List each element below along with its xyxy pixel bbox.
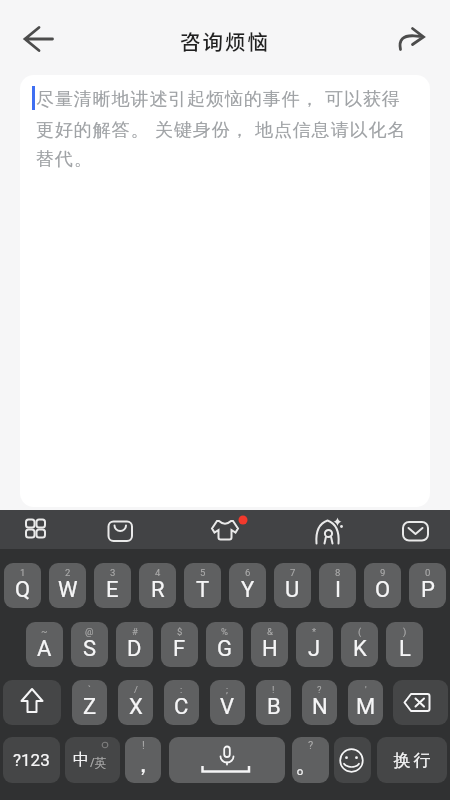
staticText: 咨询烦恼	[0, 26, 450, 56]
button[interactable]	[105, 513, 136, 546]
button[interactable]: 尽量清晰地讲述引起烦恼的事件， 可以获得	[20, 75, 430, 507]
button[interactable]: ~	[26, 622, 63, 667]
staticText: #	[132, 626, 138, 637]
button[interactable]: 4	[139, 563, 176, 608]
button[interactable]: #	[116, 622, 153, 667]
staticText: &	[267, 626, 273, 637]
button[interactable]: 3	[94, 563, 131, 608]
button[interactable]	[392, 20, 436, 58]
staticText: 8	[335, 567, 341, 578]
staticText: !	[272, 684, 275, 695]
button[interactable]	[20, 513, 51, 546]
staticText: 0	[425, 567, 431, 578]
staticText: `	[88, 684, 91, 695]
button[interactable]: 换行	[377, 737, 447, 783]
staticText: E	[106, 577, 119, 603]
button[interactable]: 2	[49, 563, 86, 608]
staticText: ?	[308, 739, 314, 752]
button[interactable]: !	[256, 680, 291, 725]
staticText: N	[312, 694, 328, 720]
button[interactable]: 0	[409, 563, 446, 608]
staticText: G	[217, 636, 232, 662]
staticText: 4	[155, 567, 161, 578]
staticText: 尽量清晰地讲述引起烦恼的事件， 可以获得	[36, 86, 401, 111]
staticText: 换行	[392, 750, 432, 771]
staticText: 更好的解答。 关键身份， 地点信息请以化名	[36, 117, 407, 142]
button[interactable]: !	[125, 737, 161, 783]
staticText: Q	[15, 577, 31, 603]
button[interactable]: 8	[319, 563, 356, 608]
staticText: S	[83, 636, 97, 662]
staticText: (	[358, 626, 362, 637]
button[interactable]: /	[118, 680, 153, 725]
staticText: /	[134, 684, 138, 695]
staticText: 9	[380, 567, 386, 578]
staticText: ?	[317, 684, 322, 695]
button[interactable]: &	[251, 622, 288, 667]
button[interactable]: ?	[292, 737, 329, 783]
button[interactable]: 中	[65, 737, 120, 783]
staticText: V	[220, 694, 235, 720]
staticText: 1	[20, 567, 26, 578]
staticText: P	[421, 577, 435, 603]
button[interactable]: $	[161, 622, 198, 667]
staticText: *	[312, 626, 317, 637]
staticText: M	[356, 694, 376, 720]
staticText: L	[399, 636, 411, 662]
button[interactable]: %	[206, 622, 243, 667]
staticText: B	[267, 694, 281, 720]
staticText: H	[262, 636, 278, 662]
staticText: ~	[41, 626, 48, 637]
staticText: Z	[83, 694, 97, 720]
staticText: ，	[131, 749, 155, 779]
staticText: A	[37, 636, 52, 662]
staticText: 替代。	[36, 148, 93, 171]
button[interactable]	[169, 737, 285, 783]
staticText: I	[335, 577, 341, 603]
staticText: 。	[295, 749, 319, 779]
button[interactable]	[393, 680, 448, 725]
staticText: 2	[65, 567, 71, 578]
button[interactable]	[334, 737, 371, 783]
staticText: 6	[245, 567, 251, 578]
button[interactable]: 7	[274, 563, 311, 608]
button[interactable]: @	[71, 622, 108, 667]
staticText: R	[151, 577, 165, 603]
staticText: D	[127, 636, 142, 662]
staticText: )	[403, 626, 407, 637]
staticText: 中	[73, 750, 89, 770]
button[interactable]	[399, 513, 433, 546]
button[interactable]: ;	[210, 680, 245, 725]
staticText: Y	[241, 577, 255, 603]
button[interactable]	[3, 680, 61, 725]
staticText: 7	[290, 567, 296, 578]
staticText: ?123	[13, 750, 50, 770]
staticText: 3	[110, 567, 116, 578]
button[interactable]: 6	[229, 563, 266, 608]
staticText: !	[142, 739, 145, 752]
staticText: X	[129, 694, 143, 720]
staticText: :	[180, 684, 183, 695]
staticText: T	[196, 577, 210, 603]
button[interactable]: ?123	[3, 737, 60, 783]
button[interactable]	[12, 20, 62, 58]
button[interactable]: *	[296, 622, 333, 667]
button[interactable]	[208, 513, 250, 546]
staticText: %	[221, 626, 228, 637]
button[interactable]: 9	[364, 563, 401, 608]
button[interactable]: '	[348, 680, 383, 725]
staticText: /英	[90, 754, 107, 770]
button[interactable]: 1	[4, 563, 41, 608]
button[interactable]: `	[72, 680, 107, 725]
staticText: '	[365, 684, 367, 695]
staticText: ;	[226, 684, 229, 695]
button[interactable]: (	[341, 622, 378, 667]
button[interactable]: :	[164, 680, 199, 725]
staticText: K	[353, 636, 367, 662]
staticText: O	[375, 577, 391, 603]
button[interactable]: 5	[184, 563, 221, 608]
button[interactable]: )	[386, 622, 423, 667]
button[interactable]	[312, 513, 346, 546]
button[interactable]: ?	[302, 680, 337, 725]
staticText: U	[285, 577, 300, 603]
